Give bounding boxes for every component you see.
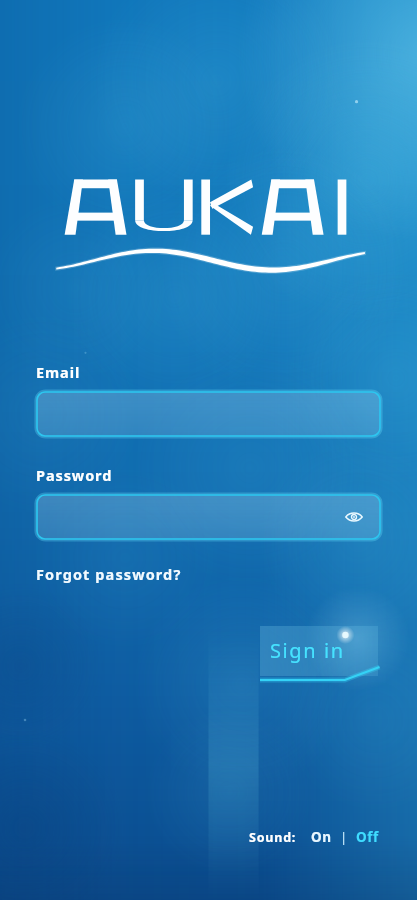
button[interactable]: Forgot password?: [36, 562, 182, 586]
button[interactable]: On: [309, 828, 334, 846]
button[interactable]: Show password: [36, 494, 381, 540]
button[interactable]: Sign in: [258, 624, 382, 684]
button[interactable]: Off: [354, 828, 381, 846]
staticText: On: [311, 828, 332, 846]
button[interactable]: [36, 391, 381, 437]
staticText: Forgot password?: [36, 564, 182, 584]
staticText: Sign in: [270, 637, 345, 664]
staticText: |: [340, 828, 348, 846]
staticText: Email: [36, 362, 81, 382]
staticText: Off: [356, 828, 379, 846]
staticText: Sound:: [249, 829, 297, 846]
button[interactable]: Show password: [341, 504, 367, 530]
staticText: Password: [36, 465, 113, 485]
